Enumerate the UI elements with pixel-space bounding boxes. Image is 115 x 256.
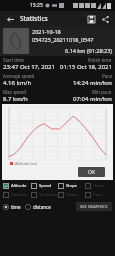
staticText: 8.7 km/h [3,95,28,103]
button[interactable]: Share [99,13,111,25]
button[interactable]: 2021-10-18 [0,26,115,56]
button[interactable]: Heart rate [85,182,112,190]
staticText: Pace [93,192,103,198]
button[interactable]: SEE GRAPHICS [76,202,112,211]
staticText: Altitude [11,183,27,189]
staticText: 15:25 [30,2,43,9]
staticText: 2021-10-18 [32,28,61,35]
staticText: 054725_20211018_0547 [32,36,94,43]
button[interactable]: time [3,203,21,211]
staticText: time [11,204,21,210]
button[interactable]: Speed [31,182,58,190]
button[interactable]: Save [85,13,97,25]
button[interactable]: Pace [85,191,112,199]
staticText: 23:47 Oct 17, 2021 [3,63,55,71]
staticText: Statistics [20,14,48,23]
staticText: Finish time [88,57,112,63]
button[interactable]: Cadence [3,191,31,199]
staticText: 01:15 Oct 18, 2021 [60,63,112,71]
staticText: Slope [66,183,77,189]
staticText: Min pace [92,89,112,95]
staticText: OK [88,169,96,176]
staticText: Heart rate [93,183,112,189]
staticText: Start time [3,57,24,63]
staticText: Temperature [39,192,58,198]
button[interactable]: Back [4,13,16,25]
button[interactable]: Power [58,191,85,199]
staticText: Average speed [3,73,35,79]
button[interactable]: Altitude [3,182,31,190]
staticText: Speed [39,183,52,189]
button[interactable]: OK [78,167,105,177]
staticText: 4.16 km/h [3,79,32,87]
staticText: SEE GRAPHICS [80,204,108,209]
button[interactable]: distance [25,203,51,211]
staticText: Power [66,192,79,198]
staticText: Max speed [3,89,26,95]
staticText: distance [33,204,51,210]
button[interactable]: Temperature [31,191,58,199]
staticText: Pace [102,73,112,79]
button[interactable]: Slope [58,182,85,190]
staticText: 07:04 min/km [73,95,112,103]
staticText: 6.14 km (01:28:23) [32,47,112,54]
staticText: 14:24 min/km [73,79,112,87]
staticText: Cadence [11,192,28,198]
staticText: Altitude (m) [15,161,37,166]
